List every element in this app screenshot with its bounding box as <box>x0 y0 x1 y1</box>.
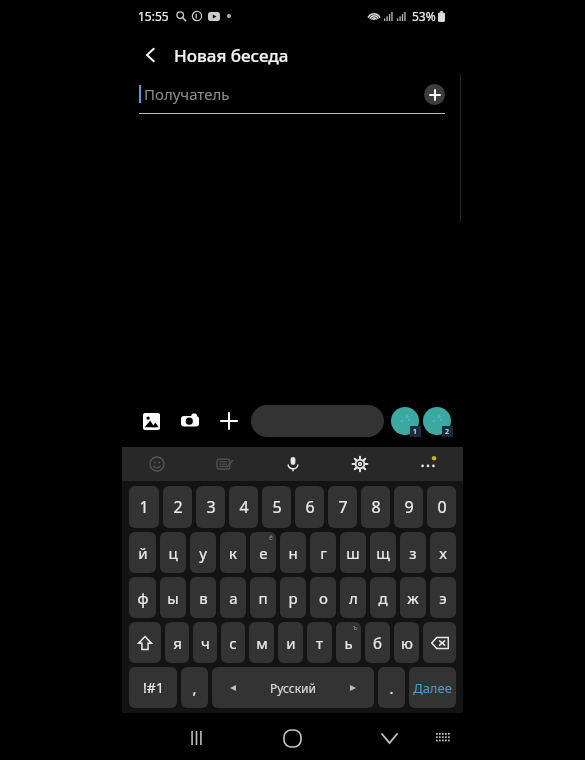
button[interactable]: 1 <box>129 486 159 528</box>
button[interactable]: Вложения <box>212 404 246 438</box>
staticText: ж <box>407 588 419 608</box>
staticText: ш <box>346 543 360 563</box>
staticText: . <box>389 678 394 698</box>
button[interactable]: 6 <box>295 486 324 528</box>
button[interactable]: . <box>378 667 405 708</box>
button[interactable]: 7 <box>328 486 357 528</box>
staticText: 1 <box>139 496 149 518</box>
button[interactable]: Удалить <box>423 622 456 663</box>
staticText: щ <box>376 543 390 563</box>
button[interactable]: 5 <box>262 486 291 528</box>
button[interactable]: л <box>340 577 366 618</box>
staticText: ь <box>344 633 353 653</box>
staticText: 4 <box>239 496 249 518</box>
staticText: а <box>229 588 238 608</box>
button[interactable]: Камера <box>173 404 207 438</box>
button[interactable]: Скрыть клавиатуру <box>369 718 409 758</box>
button[interactable]: Добавить получателя <box>424 84 445 105</box>
button[interactable]: Настройки клавиатуры <box>347 451 373 477</box>
button[interactable]: м <box>249 622 274 663</box>
staticText: 6 <box>305 496 315 518</box>
staticText: б <box>373 633 382 653</box>
button[interactable]: Галерея <box>134 404 168 438</box>
staticText: , <box>192 678 197 698</box>
button[interactable]: э <box>430 577 456 618</box>
button[interactable]: ш <box>340 532 366 573</box>
button[interactable]: з <box>400 532 426 573</box>
button[interactable]: г <box>310 532 336 573</box>
button[interactable]: ц <box>160 532 186 573</box>
button[interactable]: п <box>250 577 276 618</box>
button[interactable]: ж <box>400 577 426 618</box>
button[interactable]: Недавние приложения <box>176 718 216 758</box>
button[interactable]: 0 <box>427 486 456 528</box>
button[interactable]: 8 <box>361 486 390 528</box>
button[interactable]: Назад <box>136 40 166 70</box>
button[interactable]: Стикеры <box>144 451 170 477</box>
button[interactable]: д <box>370 577 396 618</box>
button[interactable]: ь <box>336 622 361 663</box>
button[interactable]: Shift <box>129 622 161 663</box>
button[interactable]: 2 <box>163 486 192 528</box>
button[interactable]: к <box>220 532 246 573</box>
button[interactable]: 3 <box>196 486 225 528</box>
button[interactable]: Дополнительно <box>415 451 441 477</box>
button[interactable]: у <box>190 532 216 573</box>
staticText: 53% <box>412 8 436 24</box>
button[interactable]: б <box>365 622 390 663</box>
button[interactable]: Стикер 2 <box>423 407 451 435</box>
button[interactable]: Далее <box>409 667 456 708</box>
button[interactable]: т <box>307 622 332 663</box>
staticText: Новая беседа <box>174 44 289 67</box>
staticText: д <box>378 588 388 608</box>
button[interactable]: а <box>220 577 246 618</box>
button[interactable]: щ <box>370 532 396 573</box>
button[interactable]: Голосовой ввод <box>280 451 306 477</box>
button[interactable]: ю <box>394 622 419 663</box>
staticText: 3 <box>206 496 216 518</box>
button[interactable]: в <box>190 577 216 618</box>
button[interactable]: ф <box>129 577 156 618</box>
button[interactable]: с <box>221 622 245 663</box>
button[interactable]: Получатель <box>139 80 424 108</box>
staticText: 7 <box>338 496 348 518</box>
staticText: в <box>199 588 208 608</box>
staticText: у <box>199 543 207 563</box>
button[interactable]: н <box>280 532 306 573</box>
staticText: ф <box>137 588 149 608</box>
button[interactable]: р <box>280 577 306 618</box>
staticText: е <box>259 543 268 563</box>
staticText: Получатель <box>144 84 230 104</box>
button[interactable]: Русский <box>212 667 374 708</box>
button[interactable]: х <box>430 532 456 573</box>
button[interactable]: ы <box>160 577 186 618</box>
button[interactable]: Стикер 1 <box>391 407 419 435</box>
staticText: г <box>320 543 327 563</box>
button[interactable]: 9 <box>394 486 423 528</box>
button[interactable]: Главный экран <box>272 718 312 758</box>
staticText: я <box>173 633 182 653</box>
staticText: ц <box>168 543 178 563</box>
button[interactable]: е <box>250 532 276 573</box>
staticText: ъ <box>353 623 358 633</box>
staticText: з <box>409 543 417 563</box>
button[interactable]: Сменить клавиатуру <box>423 718 463 758</box>
button[interactable]: , <box>181 667 208 708</box>
staticText: 2 <box>173 496 183 518</box>
button[interactable]: 4 <box>229 486 258 528</box>
button[interactable]: я <box>165 622 189 663</box>
button[interactable]: ч <box>193 622 217 663</box>
button[interactable]: Рукописный ввод <box>212 451 238 477</box>
staticText: к <box>229 543 237 563</box>
staticText: !#1 <box>143 678 164 697</box>
staticText: т <box>316 633 323 653</box>
staticText: й <box>138 543 148 563</box>
button[interactable]: й <box>129 532 156 573</box>
staticText: 1 <box>413 427 418 437</box>
staticText: Далее <box>413 679 452 697</box>
button[interactable] <box>251 405 384 437</box>
button[interactable]: !#1 <box>129 667 177 708</box>
button[interactable]: о <box>310 577 336 618</box>
button[interactable]: и <box>278 622 303 663</box>
staticText: 2 <box>445 427 450 437</box>
